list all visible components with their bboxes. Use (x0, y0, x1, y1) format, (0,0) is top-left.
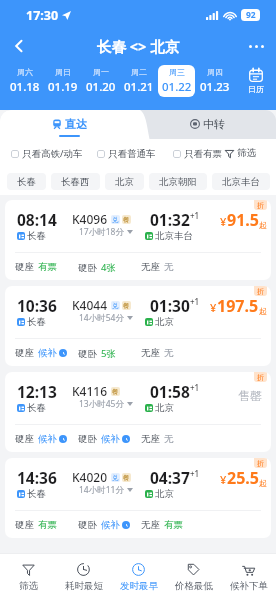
staticText: 硬座 (15, 261, 34, 273)
staticText: 筛选 (237, 147, 256, 159)
staticText: +1 (190, 468, 200, 479)
staticText: 长春 (27, 488, 46, 500)
button[interactable]: 北京朝阳 (149, 173, 207, 190)
staticText: 折 (257, 201, 264, 210)
staticText: 17:30 (26, 7, 59, 24)
staticText: 兑 (112, 474, 119, 482)
staticText: 北京 (155, 488, 174, 500)
staticText: 长春 <> 北京 (97, 36, 180, 56)
staticText: +1 (190, 210, 200, 221)
staticText: 候补下单 (230, 580, 268, 592)
staticText: 长春 (27, 316, 46, 328)
staticText: 有票 (38, 261, 57, 273)
button[interactable]: 只看有票 (173, 148, 222, 160)
staticText: 无 (164, 433, 174, 445)
staticText: 候补 (38, 347, 57, 359)
staticText: 价格最低 (175, 580, 213, 592)
button[interactable]: 周三 (158, 65, 195, 97)
staticText: 有票 (164, 519, 183, 531)
staticText: 耗时最短 (65, 580, 103, 592)
staticText: 起 (259, 220, 267, 230)
button[interactable]: Back (6, 33, 32, 59)
staticText: 01.19 (48, 79, 78, 95)
staticText: 01.20 (86, 79, 116, 95)
staticText: +1 (190, 382, 200, 393)
staticText: 周四 (207, 67, 223, 77)
button[interactable]: 折 (5, 372, 271, 452)
staticText: 起 (259, 306, 267, 316)
button[interactable]: 周四 (196, 65, 233, 97)
staticText: K4096 (72, 211, 108, 227)
staticText: 01:30 (150, 295, 190, 316)
button[interactable]: 中转 (139, 110, 276, 139)
button[interactable]: 只看普通车 (97, 148, 156, 160)
button[interactable]: 日历 (238, 65, 274, 97)
button[interactable]: 周日 (44, 65, 81, 97)
button[interactable]: 折 (5, 200, 271, 280)
staticText: 周二 (131, 67, 147, 77)
button[interactable]: 周一 (82, 65, 119, 97)
staticText: 14小时11分 (79, 484, 124, 496)
button[interactable]: 筛选 (225, 147, 256, 159)
button[interactable]: 长春 (7, 173, 46, 190)
staticText: 长春 (27, 402, 46, 414)
staticText: 01:58 (150, 381, 190, 402)
staticText: 长春西 (61, 176, 90, 188)
staticText: 硬卧 (78, 519, 97, 531)
staticText: 日历 (248, 84, 264, 94)
staticText: 无座 (141, 347, 160, 359)
button[interactable]: More options (243, 33, 269, 59)
staticText: 01.22 (162, 79, 192, 95)
staticText: K4116 (72, 383, 108, 399)
staticText: 01:32 (150, 209, 190, 230)
staticText: 周日 (55, 67, 71, 77)
staticText: 餐 (123, 216, 130, 224)
staticText: 长春 (27, 230, 46, 242)
staticText: K4020 (72, 469, 108, 485)
button[interactable]: 筛选 (0, 554, 56, 600)
staticText: 08:14 (17, 209, 57, 230)
button[interactable]: 周六 (6, 65, 43, 97)
staticText: 中转 (203, 117, 225, 131)
staticText: 周三 (169, 67, 185, 77)
staticText: 起 (259, 478, 267, 488)
staticText: ¥ (220, 472, 227, 487)
staticText: 硬座 (15, 433, 34, 445)
staticText: 只看有票 (184, 148, 222, 160)
staticText: 无座 (141, 433, 160, 445)
staticText: 长春 (17, 176, 36, 188)
staticText: 10:36 (17, 295, 57, 316)
button[interactable]: 直达 (0, 110, 139, 139)
button[interactable]: 候补下单 (221, 554, 276, 600)
staticText: 周一 (93, 67, 109, 77)
button[interactable]: 耗时最短 (56, 554, 111, 600)
staticText: 01.23 (200, 79, 230, 95)
button[interactable]: 折 (5, 458, 271, 538)
button[interactable]: 发时最早 (111, 554, 166, 600)
button[interactable]: 价格最低 (166, 554, 221, 600)
button[interactable]: 只看高铁/动车 (11, 147, 83, 160)
staticText: 04:37 (150, 467, 190, 488)
staticText: 5张 (101, 347, 116, 360)
button[interactable]: 折 (5, 286, 271, 366)
staticText: 折 (257, 459, 264, 468)
staticText: 有票 (38, 519, 57, 531)
staticText: 197.5 (217, 295, 259, 317)
staticText: K4044 (72, 297, 108, 313)
button[interactable]: 周二 (120, 65, 157, 97)
button[interactable]: 北京丰台 (212, 173, 270, 190)
staticText: 直达 (65, 117, 87, 131)
staticText: 候补 (38, 433, 57, 445)
staticText: 硬座 (15, 347, 34, 359)
staticText: 北京丰台 (222, 176, 260, 188)
staticText: 餐 (112, 388, 119, 396)
button[interactable]: 北京 (105, 173, 144, 190)
staticText: 折 (257, 287, 264, 296)
staticText: 14小时54分 (79, 312, 124, 324)
staticText: 售罄 (238, 388, 262, 403)
staticText: 北京 (155, 402, 174, 414)
button[interactable]: 长春西 (51, 173, 100, 190)
staticText: 无 (164, 347, 174, 359)
staticText: 候补 (101, 433, 120, 445)
staticText: 筛选 (19, 580, 38, 592)
